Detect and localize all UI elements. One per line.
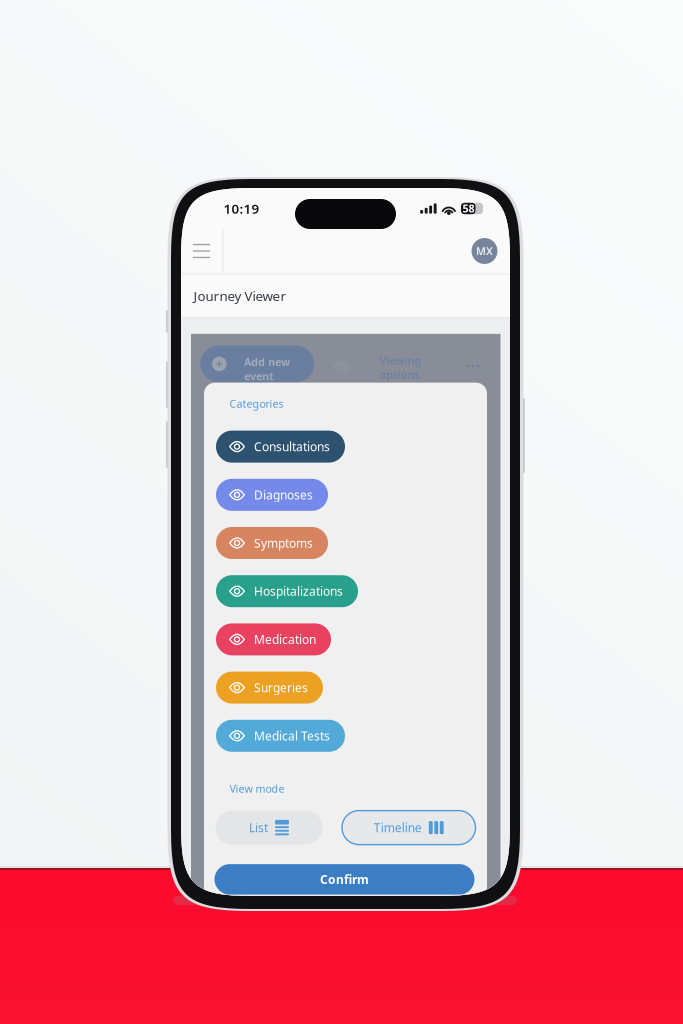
staticText: Surgeries (254, 680, 308, 695)
button[interactable]: Surgeries (216, 672, 323, 704)
staticText: Symptoms (254, 535, 313, 551)
staticText: 10:19 (223, 200, 259, 217)
staticText: Medical Tests (254, 728, 330, 744)
staticText: Hospitalizations (254, 583, 343, 599)
staticText: Timeline (374, 820, 422, 835)
button[interactable]: Symptoms (216, 527, 328, 559)
button[interactable]: Medical Tests (216, 720, 345, 752)
button[interactable]: Hospitalizations (216, 575, 358, 607)
button[interactable]: More options (460, 355, 486, 377)
staticText: MX (476, 244, 493, 258)
button[interactable]: Account (467, 229, 501, 273)
button[interactable]: List (215, 811, 322, 845)
staticText: View mode (229, 782, 284, 796)
button[interactable]: Viewing options (373, 353, 427, 387)
button[interactable]: Confirm (214, 864, 474, 895)
button[interactable]: Diagnoses (216, 479, 328, 511)
button[interactable]: Timeline (342, 811, 475, 845)
staticText: Consultations (254, 439, 330, 454)
button[interactable]: Consultations (216, 431, 345, 463)
staticText: 58 (463, 201, 475, 215)
button[interactable]: Menu (186, 229, 216, 273)
staticText: List (249, 820, 268, 835)
staticText: Journey Viewer (193, 287, 286, 305)
staticText: Add new event (244, 355, 290, 383)
staticText: Categories (229, 397, 283, 411)
staticText: Confirm (320, 871, 369, 887)
button[interactable]: Add new event (200, 345, 314, 382)
button[interactable]: Medication (216, 623, 331, 655)
staticText: Medication (254, 631, 316, 647)
staticText: Diagnoses (254, 487, 313, 503)
staticText: Viewing options (379, 353, 421, 382)
